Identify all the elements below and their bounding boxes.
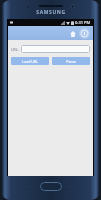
button[interactable]: Parse bbox=[52, 57, 90, 65]
button[interactable]: Home bbox=[67, 28, 78, 39]
button[interactable]: Home button bbox=[40, 182, 62, 191]
button[interactable] bbox=[21, 45, 90, 53]
button[interactable]: More options bbox=[79, 28, 90, 39]
staticText: Load URL bbox=[22, 59, 38, 64]
button[interactable]: Load URL bbox=[11, 57, 49, 65]
staticText: URL: bbox=[11, 47, 19, 52]
staticText: 6:31 PM bbox=[75, 20, 91, 25]
staticText: SAMSUNG bbox=[36, 9, 66, 16]
staticText: Parse bbox=[66, 59, 76, 64]
